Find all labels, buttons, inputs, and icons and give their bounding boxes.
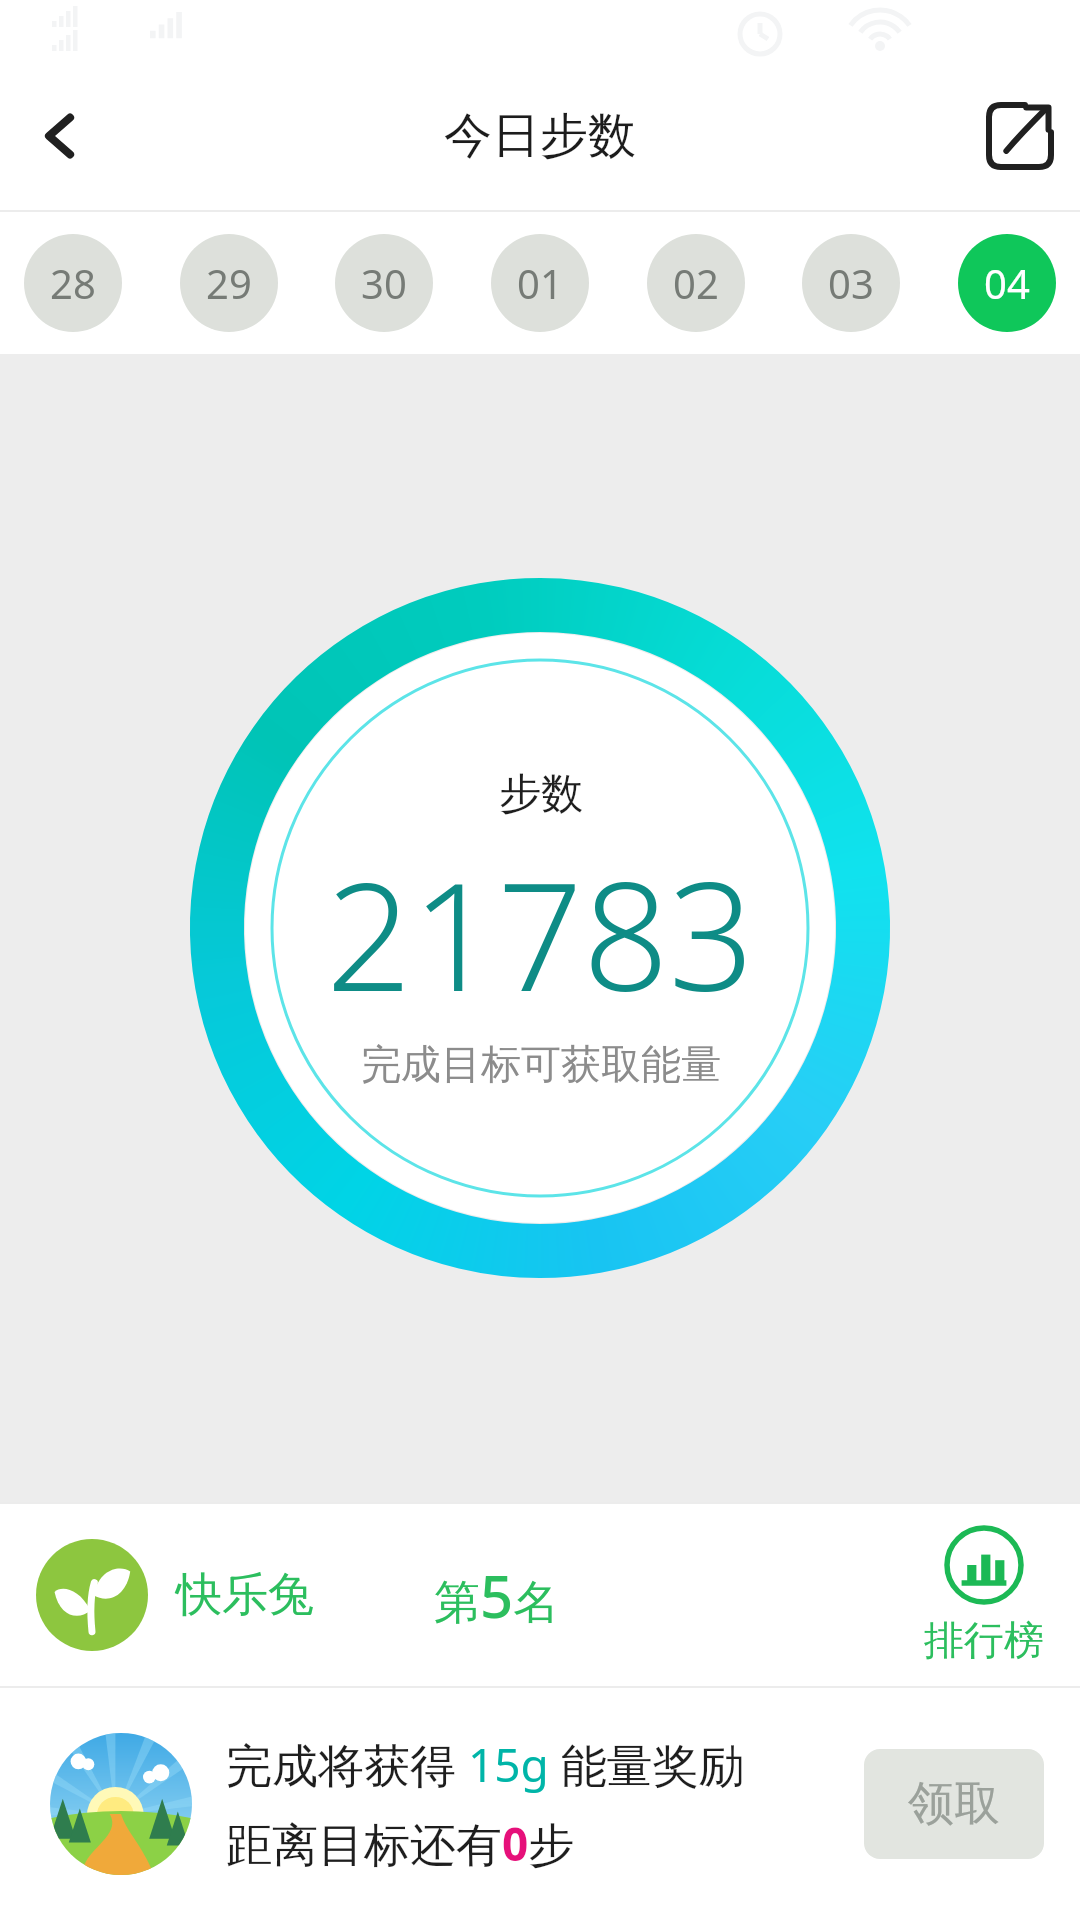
- button[interactable]: Back: [0, 76, 120, 196]
- staticText: 步数: [499, 768, 583, 821]
- button[interactable]: 领取: [864, 1749, 1044, 1859]
- button[interactable]: 02: [647, 234, 745, 332]
- button[interactable]: 30: [335, 234, 433, 332]
- button[interactable]: 29: [180, 234, 278, 332]
- staticText: 领取: [908, 1775, 1000, 1833]
- staticText: 距离目标还有0步: [226, 1812, 575, 1875]
- staticText: 第5名: [434, 1556, 560, 1635]
- staticText: 30: [361, 256, 407, 310]
- staticText: 排行榜: [924, 1615, 1044, 1665]
- button[interactable]: 排行榜: [924, 1525, 1044, 1665]
- staticText: 21783: [326, 831, 755, 1035]
- button[interactable]: 03: [802, 234, 900, 332]
- staticText: 28: [50, 256, 96, 310]
- staticText: 快乐兔: [176, 1566, 314, 1624]
- staticText: 完成将获得 15g 能量奖励: [226, 1733, 745, 1796]
- staticText: 03: [828, 256, 874, 310]
- button[interactable]: 28: [24, 234, 122, 332]
- staticText: 02: [673, 256, 719, 310]
- staticText: 29: [206, 256, 252, 310]
- staticText: 01: [517, 256, 563, 310]
- button[interactable]: 01: [491, 234, 589, 332]
- button[interactable]: 第5名: [434, 1556, 560, 1635]
- button[interactable]: Share: [960, 76, 1080, 196]
- button[interactable]: 快乐兔: [36, 1539, 314, 1651]
- staticText: 完成目标可获取能量: [361, 1039, 721, 1089]
- staticText: 今日步数: [444, 106, 636, 166]
- button[interactable]: 04: [958, 234, 1056, 332]
- staticText: 04: [984, 256, 1030, 310]
